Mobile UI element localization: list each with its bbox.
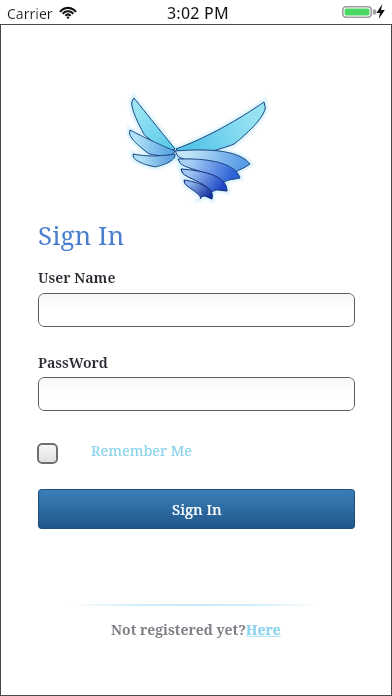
staticText: Remember Me — [91, 440, 193, 460]
staticText: Sign In — [172, 499, 222, 519]
button[interactable] — [38, 377, 355, 411]
staticText: User Name — [38, 268, 116, 287]
staticText: PassWord — [38, 353, 108, 372]
staticText: Sign In — [38, 217, 125, 252]
button[interactable] — [38, 293, 355, 327]
button[interactable]: Remember Me checkbox — [37, 443, 58, 464]
staticText: Not registered yet?Here — [111, 620, 281, 639]
button[interactable]: Sign In — [38, 489, 355, 529]
button[interactable]: Remember Me — [91, 440, 193, 460]
staticText: Carrier — [7, 4, 53, 23]
other: App logo — [126, 96, 266, 200]
button[interactable]: Not registered yet?Here — [111, 620, 281, 639]
staticText: 3:02 PM — [167, 2, 229, 24]
